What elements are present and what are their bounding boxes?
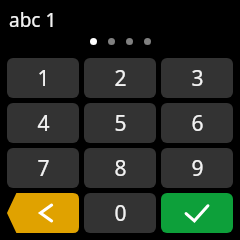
button[interactable]: 2 bbox=[84, 58, 156, 98]
staticText: 2 bbox=[114, 64, 127, 93]
button[interactable]: 9 bbox=[161, 148, 233, 188]
button[interactable]: 4 bbox=[7, 103, 79, 143]
staticText: 6 bbox=[191, 109, 204, 138]
staticText: 0 bbox=[114, 199, 127, 228]
button[interactable]: 7 bbox=[7, 148, 79, 188]
button[interactable]: 6 bbox=[161, 103, 233, 143]
button[interactable]: 5 bbox=[84, 103, 156, 143]
button[interactable]: 1 bbox=[7, 58, 79, 98]
staticText: 1 bbox=[37, 64, 50, 93]
button[interactable]: 0 bbox=[84, 193, 156, 233]
button[interactable]: Backspace bbox=[7, 193, 79, 233]
staticText: abc 1 bbox=[9, 7, 57, 33]
button[interactable]: Confirm bbox=[161, 193, 233, 233]
button[interactable]: 3 bbox=[161, 58, 233, 98]
staticText: 7 bbox=[37, 154, 50, 183]
staticText: 9 bbox=[191, 154, 204, 183]
button[interactable]: 8 bbox=[84, 148, 156, 188]
staticText: 3 bbox=[191, 64, 204, 93]
staticText: 8 bbox=[114, 154, 127, 183]
staticText: 5 bbox=[114, 109, 127, 138]
staticText: 4 bbox=[37, 109, 50, 138]
